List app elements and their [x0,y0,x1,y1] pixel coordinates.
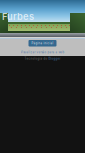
button[interactable]: Blogger [48,57,60,60]
button[interactable]: Visualizar versão para a web [20,46,64,55]
staticText: Blogger [48,57,60,60]
staticText: Página inicial [31,42,53,45]
button[interactable]: Página inicial [28,40,56,46]
staticText: Tecnologia do [24,57,47,60]
staticText: Visualizar versão para a web [20,50,64,54]
staticText: Furbes [2,11,34,22]
